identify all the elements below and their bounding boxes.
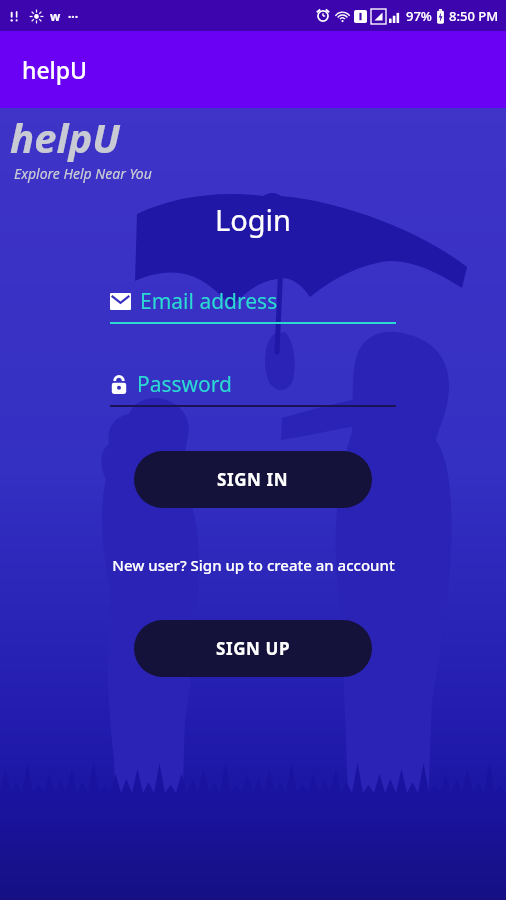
button[interactable]: Email address field xyxy=(110,287,396,324)
staticText: SIGN UP xyxy=(216,637,291,660)
staticText: SIGN IN xyxy=(217,468,289,491)
staticText: Password xyxy=(137,370,232,399)
staticText: ··· xyxy=(68,8,79,24)
staticText: helpU xyxy=(10,110,120,164)
staticText: Email address xyxy=(140,287,278,316)
staticText: Login xyxy=(215,200,291,239)
button[interactable]: Password field xyxy=(110,370,396,407)
staticText: 97% xyxy=(406,7,432,25)
button[interactable]: SIGN IN xyxy=(134,451,372,508)
button[interactable]: New user? Sign up to create an account xyxy=(0,552,506,578)
staticText: w xyxy=(50,8,61,24)
staticText: helpU xyxy=(22,54,88,85)
staticText: 8:50 PM xyxy=(449,7,499,25)
button[interactable]: SIGN UP xyxy=(134,620,372,677)
staticText: New user? Sign up to create an account xyxy=(112,555,395,575)
staticText: Explore Help Near You xyxy=(14,164,152,183)
